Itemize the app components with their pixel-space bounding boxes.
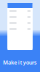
staticText: Make it yours [3, 59, 37, 66]
